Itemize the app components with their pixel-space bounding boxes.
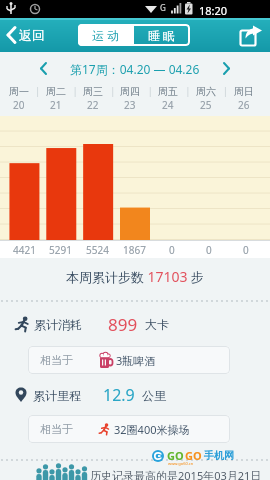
button[interactable]: 本周累计步数 17103 步: [0, 258, 270, 300]
staticText: 3瓶啤酒: [116, 353, 156, 368]
button[interactable]: 运 动: [78, 24, 134, 46]
staticText: 周六: [196, 85, 216, 98]
staticText: 周五: [158, 85, 178, 98]
button[interactable]: 相当于: [40, 346, 230, 374]
staticText: 周日: [234, 85, 254, 98]
button[interactable]: 相当于: [40, 415, 230, 443]
staticText: 返回: [19, 27, 45, 43]
button[interactable]: 第17周：04.20 — 04.26: [0, 52, 270, 85]
staticText: 累计里程: [33, 388, 81, 403]
staticText: 23: [124, 98, 136, 112]
staticText: 5291: [49, 243, 72, 257]
staticText: 手机网: [204, 449, 234, 462]
staticText: 运 动: [92, 27, 120, 43]
staticText: 相当于: [40, 422, 73, 436]
staticText: 1867: [123, 243, 146, 257]
staticText: 5524: [86, 243, 109, 257]
staticText: 周二: [46, 85, 66, 98]
staticText: GO: [167, 448, 184, 463]
staticText: 累计消耗: [34, 317, 82, 332]
staticText: 25: [200, 98, 212, 112]
staticText: 22: [87, 98, 99, 112]
staticText: 4421: [13, 243, 36, 257]
staticText: 大卡: [145, 317, 169, 332]
staticText: 周一: [9, 85, 29, 98]
staticText: 0: [206, 243, 212, 257]
button[interactable]: [239, 23, 263, 47]
staticText: 0: [169, 243, 175, 257]
staticText: 睡 眠: [148, 27, 176, 43]
button[interactable]: 睡 眠: [134, 24, 190, 46]
staticText: 周三: [83, 85, 103, 98]
staticText: 32圈400米操场: [114, 422, 190, 437]
staticText: 本周累计步数 17103 步: [66, 267, 204, 286]
staticText: 21: [50, 98, 62, 112]
staticText: www.go60.cn: [168, 461, 194, 466]
staticText: 历史记录最高的是2015年03月21日: [90, 468, 262, 480]
staticText: 26: [238, 98, 250, 112]
staticText: 12.9: [103, 384, 135, 406]
staticText: 20: [13, 98, 25, 112]
staticText: 周四: [120, 85, 140, 98]
staticText: 24: [162, 98, 174, 112]
staticText: 18:20: [199, 3, 228, 18]
button[interactable]: 返回: [6, 26, 45, 44]
staticText: 公里: [142, 388, 166, 403]
staticText: GO: [185, 448, 202, 463]
staticText: 0: [243, 243, 249, 257]
staticText: 第17周：04.20 — 04.26: [70, 61, 200, 77]
staticText: 相当于: [40, 353, 73, 367]
staticText: 899: [108, 313, 138, 336]
staticText: G: [160, 2, 166, 13]
